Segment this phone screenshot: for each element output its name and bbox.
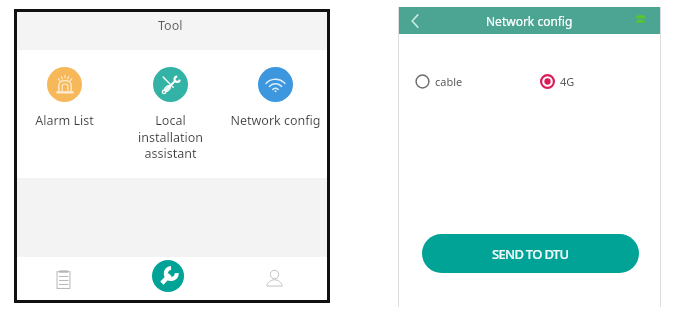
button[interactable]: SEND TO DTU bbox=[422, 234, 639, 273]
button[interactable]: Alarm List bbox=[16, 67, 112, 129]
staticText: Network config bbox=[486, 13, 573, 29]
button[interactable]: cable bbox=[415, 73, 463, 89]
staticText: Network config bbox=[230, 112, 321, 129]
button[interactable]: Network config bbox=[227, 67, 323, 129]
button[interactable]: Tool bbox=[152, 260, 184, 292]
button[interactable]: Profile bbox=[260, 264, 288, 292]
staticText: SEND TO DTU bbox=[492, 245, 569, 263]
staticText: Alarm List bbox=[35, 112, 94, 129]
staticText: Tool bbox=[158, 17, 183, 33]
staticText: Local installation assistant bbox=[138, 112, 203, 161]
staticText: 4G bbox=[560, 74, 575, 89]
button[interactable]: Back bbox=[401, 7, 428, 34]
button[interactable]: Records bbox=[49, 265, 77, 293]
button[interactable]: 4G bbox=[540, 73, 575, 89]
button[interactable]: Signal strength bbox=[627, 7, 654, 34]
staticText: cable bbox=[435, 74, 463, 89]
button[interactable]: Local installation assistant bbox=[122, 67, 218, 161]
